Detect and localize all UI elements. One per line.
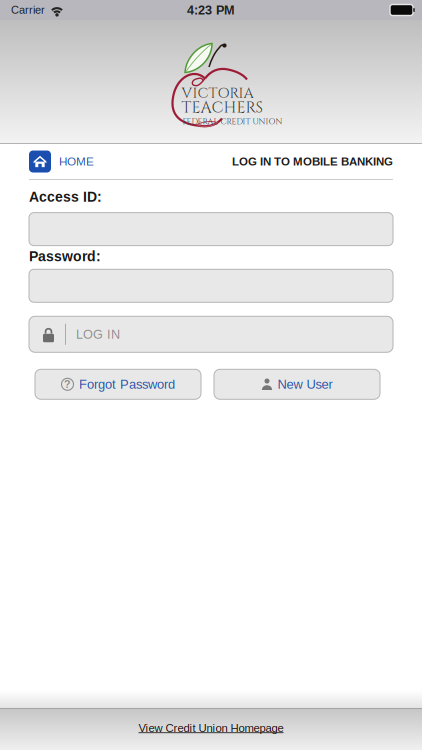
staticText: VICTORIA bbox=[181, 84, 253, 103]
button[interactable]: View Credit Union Homepage bbox=[124, 715, 297, 741]
staticText: LOG IN TO MOBILE BANKING bbox=[232, 155, 393, 168]
button[interactable]: LOG IN bbox=[29, 316, 393, 352]
button[interactable]: ? bbox=[35, 369, 201, 399]
staticText: View Credit Union Homepage bbox=[138, 722, 283, 734]
staticText: Access ID: bbox=[29, 189, 102, 205]
button[interactable]: New User bbox=[214, 369, 380, 399]
staticText: TEACHERS bbox=[181, 97, 262, 118]
button[interactable]: HOME bbox=[29, 150, 94, 172]
staticText: New User bbox=[277, 377, 332, 391]
staticText: LOG IN bbox=[76, 327, 120, 341]
staticText: 4:23 PM bbox=[187, 3, 235, 17]
staticText: Carrier bbox=[11, 4, 45, 16]
staticText: HOME bbox=[59, 155, 94, 168]
staticText: ? bbox=[64, 378, 71, 390]
staticText: FEDERAL CREDIT UNION bbox=[182, 116, 282, 127]
staticText: Forgot Password bbox=[79, 377, 175, 391]
staticText: Password: bbox=[29, 249, 101, 264]
